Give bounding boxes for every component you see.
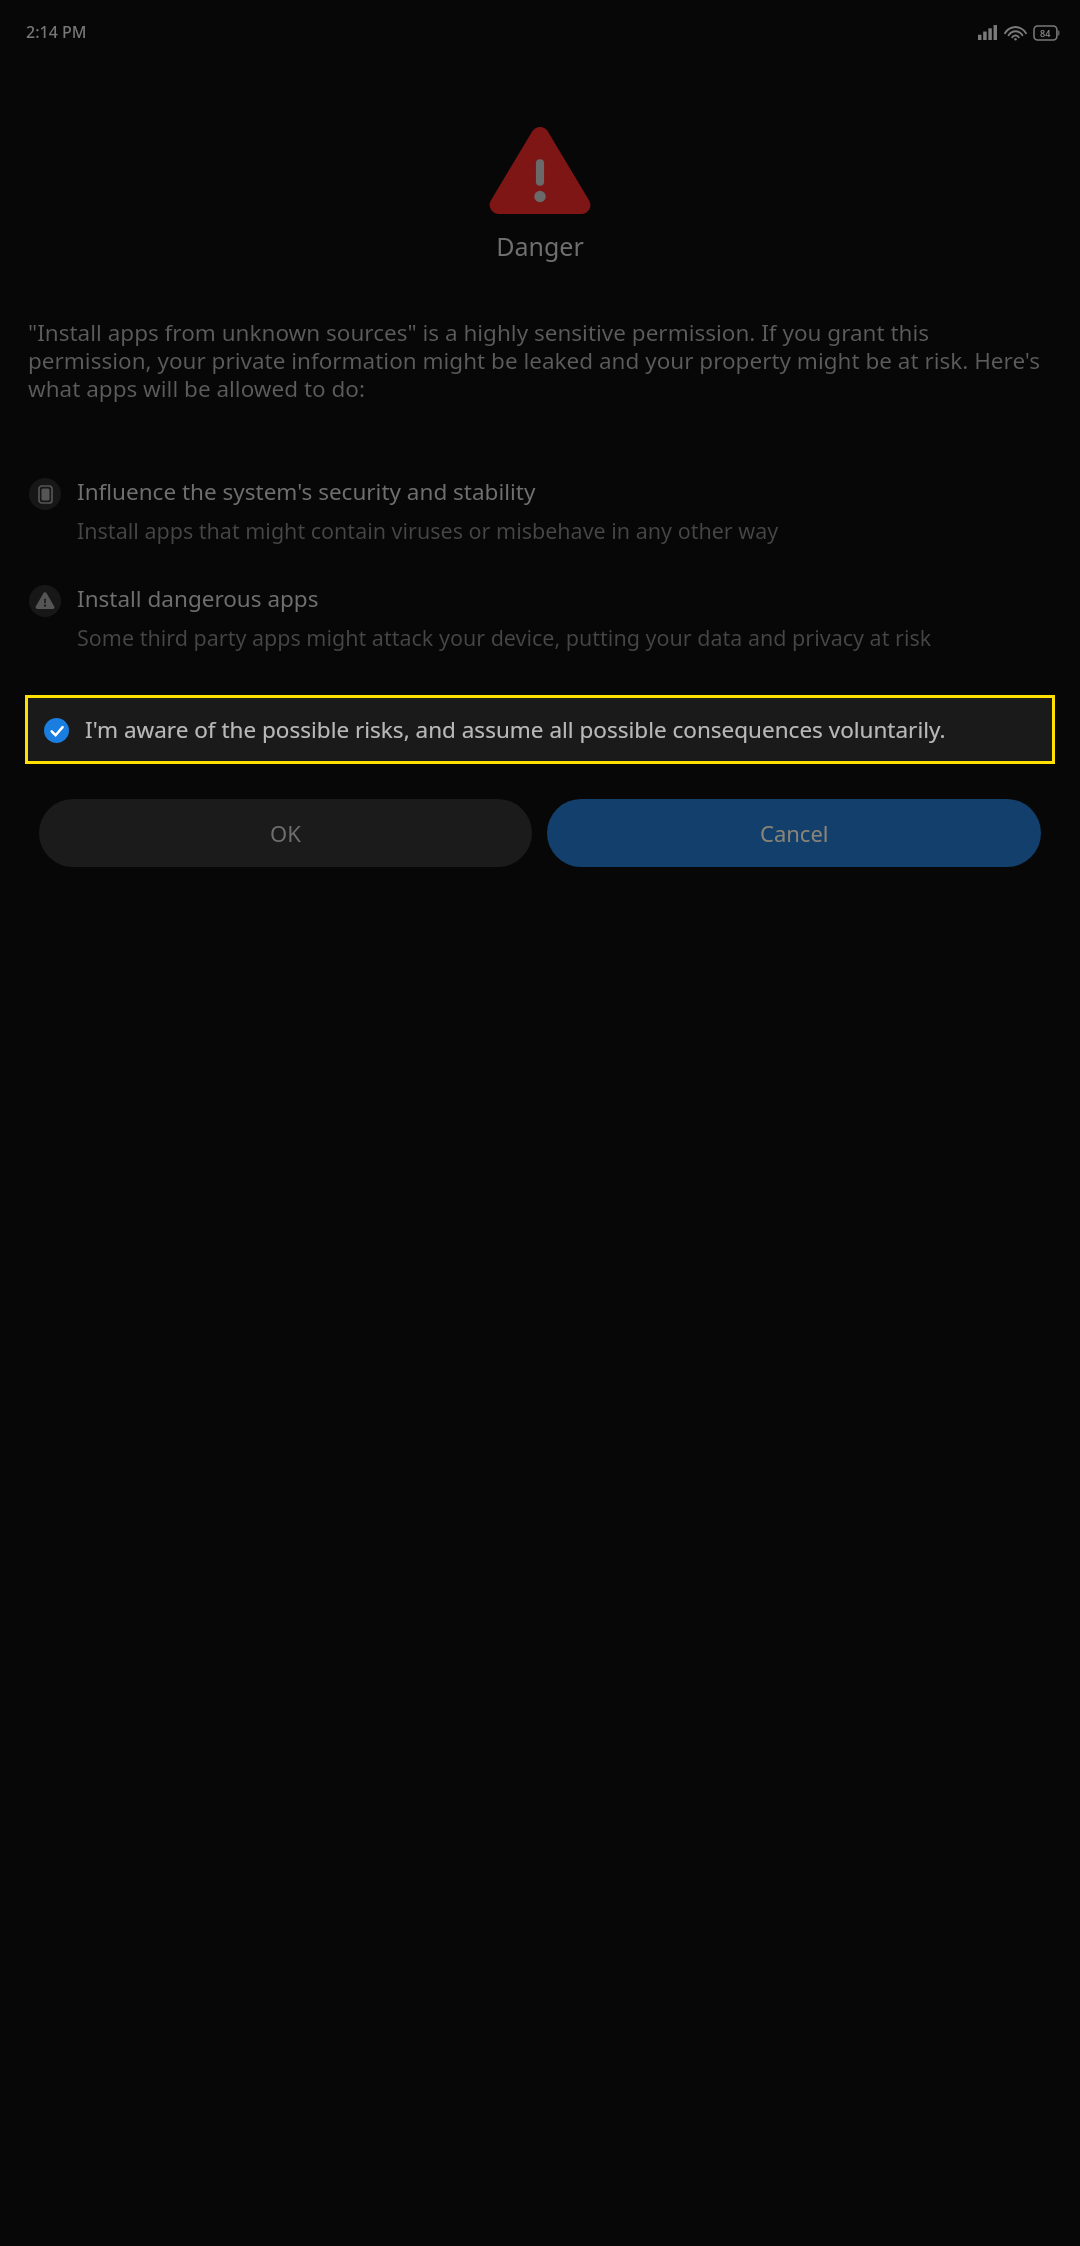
staticText: "Install apps from unknown sources" is a… [28, 317, 1054, 404]
button[interactable]: I'm aware of the possible risks, and ass… [25, 695, 1055, 764]
button[interactable]: OK [39, 799, 532, 867]
staticText: Install dangerous apps [77, 583, 319, 614]
staticText: Some third party apps might attack your … [77, 623, 932, 652]
staticText: OK [270, 818, 301, 848]
staticText: 2:14 PM [26, 21, 87, 43]
button[interactable]: Influence the system's security and stab… [0, 476, 1080, 545]
staticText: Danger [496, 229, 584, 263]
staticText: Influence the system's security and stab… [77, 476, 536, 507]
staticText: Install apps that might contain viruses … [77, 516, 779, 545]
staticText: Cancel [760, 818, 829, 848]
staticText: I'm aware of the possible risks, and ass… [85, 714, 946, 745]
button[interactable]: Install dangerous apps [0, 583, 1080, 652]
button[interactable]: Cancel [547, 799, 1041, 867]
staticText: 84 [1040, 27, 1051, 39]
